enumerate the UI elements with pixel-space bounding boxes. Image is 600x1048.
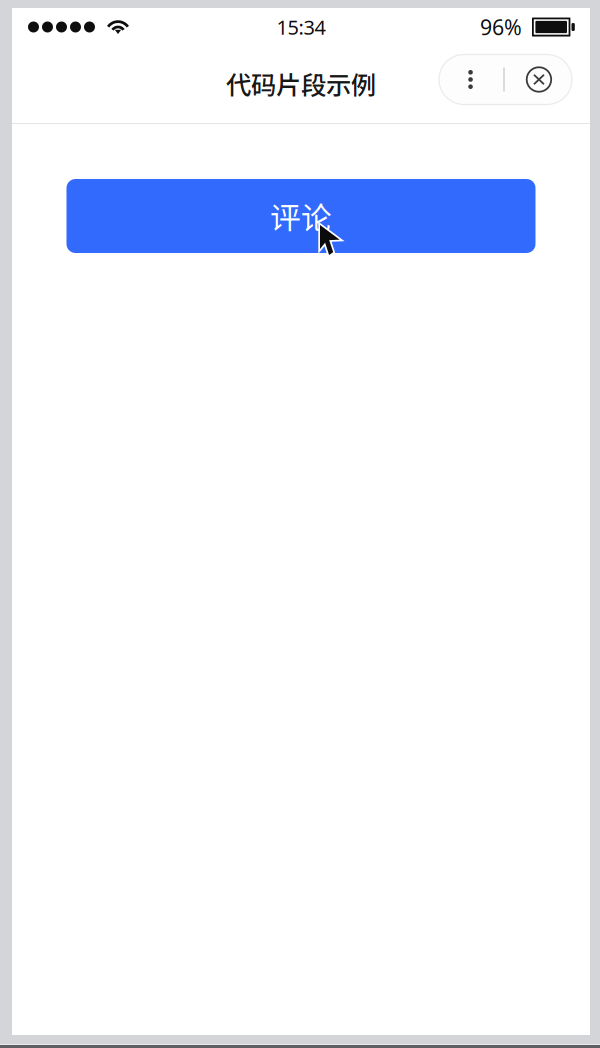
staticText: 代码片段示例 xyxy=(226,65,376,102)
button[interactable]: Close mini program xyxy=(505,54,573,104)
staticText: 评论 xyxy=(270,194,332,238)
button[interactable]: 评论 xyxy=(66,179,535,253)
staticText: 96% xyxy=(480,13,522,41)
staticText: 15:34 xyxy=(276,14,325,40)
button[interactable]: More options xyxy=(438,54,503,104)
